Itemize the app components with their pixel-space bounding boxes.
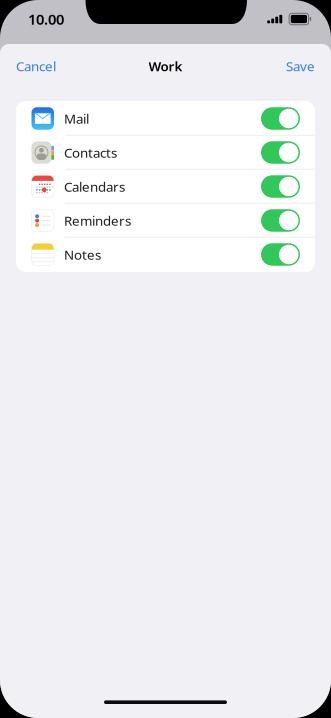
button[interactable]: Reminders [16,203,315,237]
staticText: Work [148,57,182,75]
staticText: 10.00 [28,9,64,29]
staticText: Calendars [64,178,125,195]
staticText: Cancel [16,57,56,75]
button[interactable]: Save [270,49,331,83]
staticText: Notes [64,246,101,263]
staticText: Reminders [64,212,131,229]
button[interactable]: Notes [16,237,315,271]
button[interactable]: Mail [16,101,315,135]
staticText: Save [286,57,315,75]
staticText: Contacts [64,144,117,161]
staticText: Mail [64,110,89,127]
button[interactable]: Calendars [16,169,315,203]
button[interactable]: Contacts [16,135,315,169]
button[interactable]: Cancel [0,49,72,83]
